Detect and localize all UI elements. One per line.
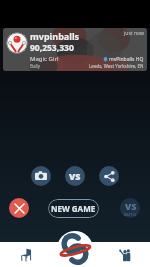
button[interactable]: mvpinballs — [3, 28, 147, 71]
staticText: VS — [69, 170, 81, 182]
staticText: just now — [124, 30, 144, 37]
button[interactable]: Versus disabled — [120, 198, 140, 218]
button[interactable]: Take photo — [31, 166, 51, 186]
staticText: mvPinballs HQ — [109, 56, 144, 63]
button[interactable]: Players — [100, 242, 150, 267]
staticText: NEW GAME — [51, 203, 96, 214]
button[interactable]: NEW GAME — [48, 199, 99, 218]
staticText: BATTLE — [124, 212, 137, 217]
staticText: mvpinballs — [30, 30, 80, 42]
button[interactable]: Share — [99, 166, 119, 186]
button[interactable]: Venues — [0, 242, 50, 267]
staticText: Bally — [30, 63, 41, 69]
button[interactable]: Home — [57, 231, 93, 267]
button[interactable]: Cancel game — [9, 198, 29, 218]
staticText: VS — [125, 200, 137, 212]
button[interactable]: Versus — [65, 166, 85, 186]
staticText: Magic Girl — [30, 55, 59, 63]
staticText: Leeds, West Yorkshire, EN — [89, 63, 144, 69]
staticText: 90,253,330 — [30, 42, 74, 54]
